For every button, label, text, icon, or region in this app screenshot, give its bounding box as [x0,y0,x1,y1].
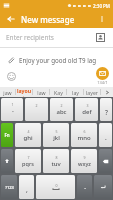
button[interactable]: Send message [96,67,109,80]
staticText: 4 [27,129,30,134]
staticText: layout [16,87,32,97]
button[interactable]: Insert emoji [5,70,17,82]
button[interactable]: Kay [50,87,66,97]
button[interactable]: 4 [15,123,41,147]
staticText: ? [105,108,108,117]
staticText: , [26,185,28,194]
button[interactable]: More options [95,12,109,26]
staticText: Kay [54,89,63,96]
button[interactable]: . [99,123,112,147]
staticText: ghi [23,134,33,142]
staticText: · [12,107,14,117]
staticText: Enter recipients [6,33,94,42]
staticText: mno [77,134,91,142]
staticText: 2:30 PM [93,3,110,9]
button[interactable]: Symbols [1,175,17,199]
staticText: . [84,183,86,191]
staticText: wxyz [78,160,91,167]
button[interactable]: Space [36,175,75,199]
button[interactable]: ? [100,98,112,121]
staticText: 6 [83,129,86,134]
button[interactable]: 1 [1,98,23,121]
button[interactable]: More suggestions [101,87,113,97]
staticText: lay [72,89,79,96]
button[interactable]: 6 [71,123,97,147]
button[interactable]: lay [67,87,83,97]
staticText: layer [86,89,98,96]
staticText: def [82,108,92,116]
button[interactable]: , [19,175,34,199]
staticText: Fn [4,132,10,138]
staticText: 8 [55,155,58,160]
button[interactable]: 7 [15,149,41,173]
button[interactable]: 3 [75,98,98,121]
staticText: Enjoy your good old T9 lag [19,56,97,64]
staticText: 9 [83,155,86,160]
button[interactable]: Enter [94,175,112,199]
staticText: . [105,133,107,142]
button[interactable]: 9 [71,149,97,173]
staticText: jaw [3,89,12,96]
staticText: 2 [60,103,63,108]
button[interactable]: Shift [1,149,13,173]
button[interactable]: 8 [43,149,69,173]
staticText: pqrs [22,160,34,167]
button[interactable]: layer [84,87,100,97]
staticText: 3 [86,103,89,108]
button[interactable]: 2 [50,98,73,121]
button[interactable]: Period [77,175,92,199]
button[interactable]: 2 [25,98,48,121]
staticText: 0 [55,183,58,188]
staticText: jkl [53,134,60,142]
button[interactable]: Attach [5,54,16,65]
button[interactable]: law [33,87,49,97]
staticText: 2 [35,103,38,108]
staticText: New message [21,14,75,25]
button[interactable]: 5 [43,123,69,147]
button[interactable]: Backspace [99,149,112,173]
button[interactable]: layout [16,87,32,97]
staticText: ?123 [5,185,14,190]
staticText: 134/1 [97,80,108,85]
button[interactable]: Back [4,12,18,26]
staticText: 1 [11,102,14,107]
staticText: 7 [27,155,30,160]
staticText: 5 [55,129,58,134]
staticText: abc [56,108,67,116]
button[interactable]: Function [1,123,13,147]
button[interactable]: Add recipient from contacts [94,31,107,44]
staticText: law [37,89,46,96]
staticText: tuv [51,160,61,168]
button[interactable]: jaw [0,87,15,97]
